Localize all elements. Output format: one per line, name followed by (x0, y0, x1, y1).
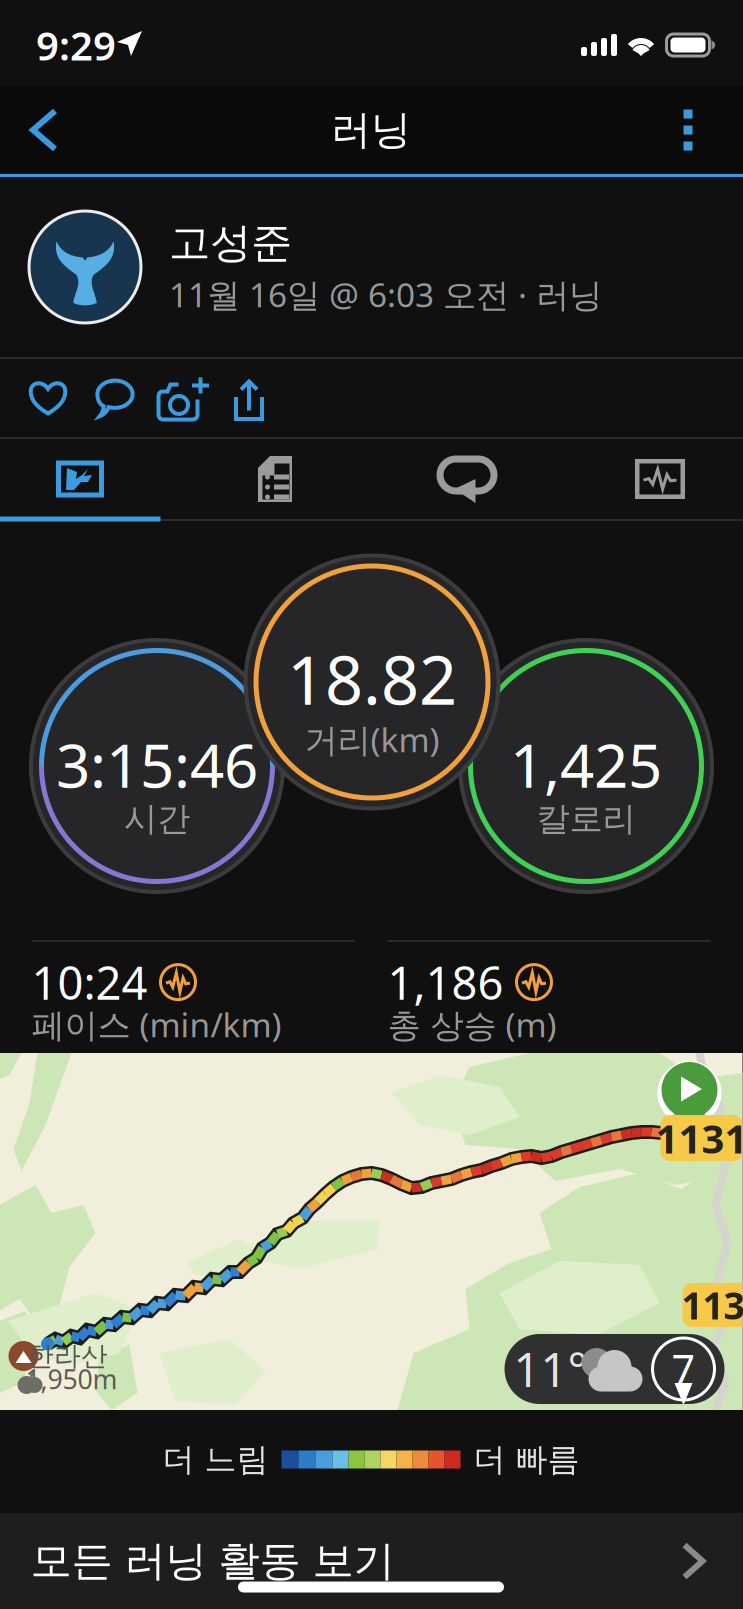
button[interactable]: Details (225, 440, 325, 518)
staticText: 18.82 (287, 635, 457, 723)
staticText: 총 상승 (m) (387, 1002, 556, 1046)
staticText: 1,186 (387, 952, 503, 1012)
button[interactable]: Comment (81, 359, 149, 437)
staticText: 10:24 (31, 952, 147, 1012)
button[interactable]: Back (7, 86, 81, 174)
staticText: 더 빠름 (473, 1440, 579, 1479)
button[interactable]: Share (217, 359, 281, 437)
button[interactable]: More options (655, 86, 721, 174)
staticText: 1131 (681, 1280, 743, 1330)
staticText: 1131 (655, 1111, 743, 1164)
staticText: 1,950m (25, 1361, 117, 1397)
staticText: 고성준 (169, 217, 292, 268)
staticText: 페이스 (min/km) (31, 1002, 281, 1046)
staticText: 칼로리 (536, 798, 635, 839)
button[interactable]: Photos (149, 359, 217, 437)
button[interactable]: 모든 러닝 활동 보기 (0, 1513, 742, 1609)
staticText: 거리(km) (304, 717, 439, 761)
button[interactable]: Laps (417, 440, 517, 518)
staticText: 시간 (124, 798, 190, 839)
staticText: 7 (671, 1342, 695, 1396)
staticText: 9:29 (36, 18, 116, 71)
button[interactable]: Map (30, 440, 130, 518)
button[interactable]: Graphs (610, 440, 710, 518)
staticText: 러닝 (331, 105, 411, 154)
staticText: 한라산 (27, 1340, 108, 1372)
staticText: 1,425 (510, 725, 662, 804)
button[interactable]: Like (15, 359, 81, 437)
staticText: 모든 러닝 활동 보기 (30, 1536, 394, 1586)
staticText: 더 느림 (162, 1440, 268, 1479)
staticText: 11° (513, 1338, 587, 1400)
staticText: 3:15:46 (56, 725, 258, 804)
staticText: 11월 16일 @ 6:03 오전 · 러닝 (169, 272, 602, 317)
